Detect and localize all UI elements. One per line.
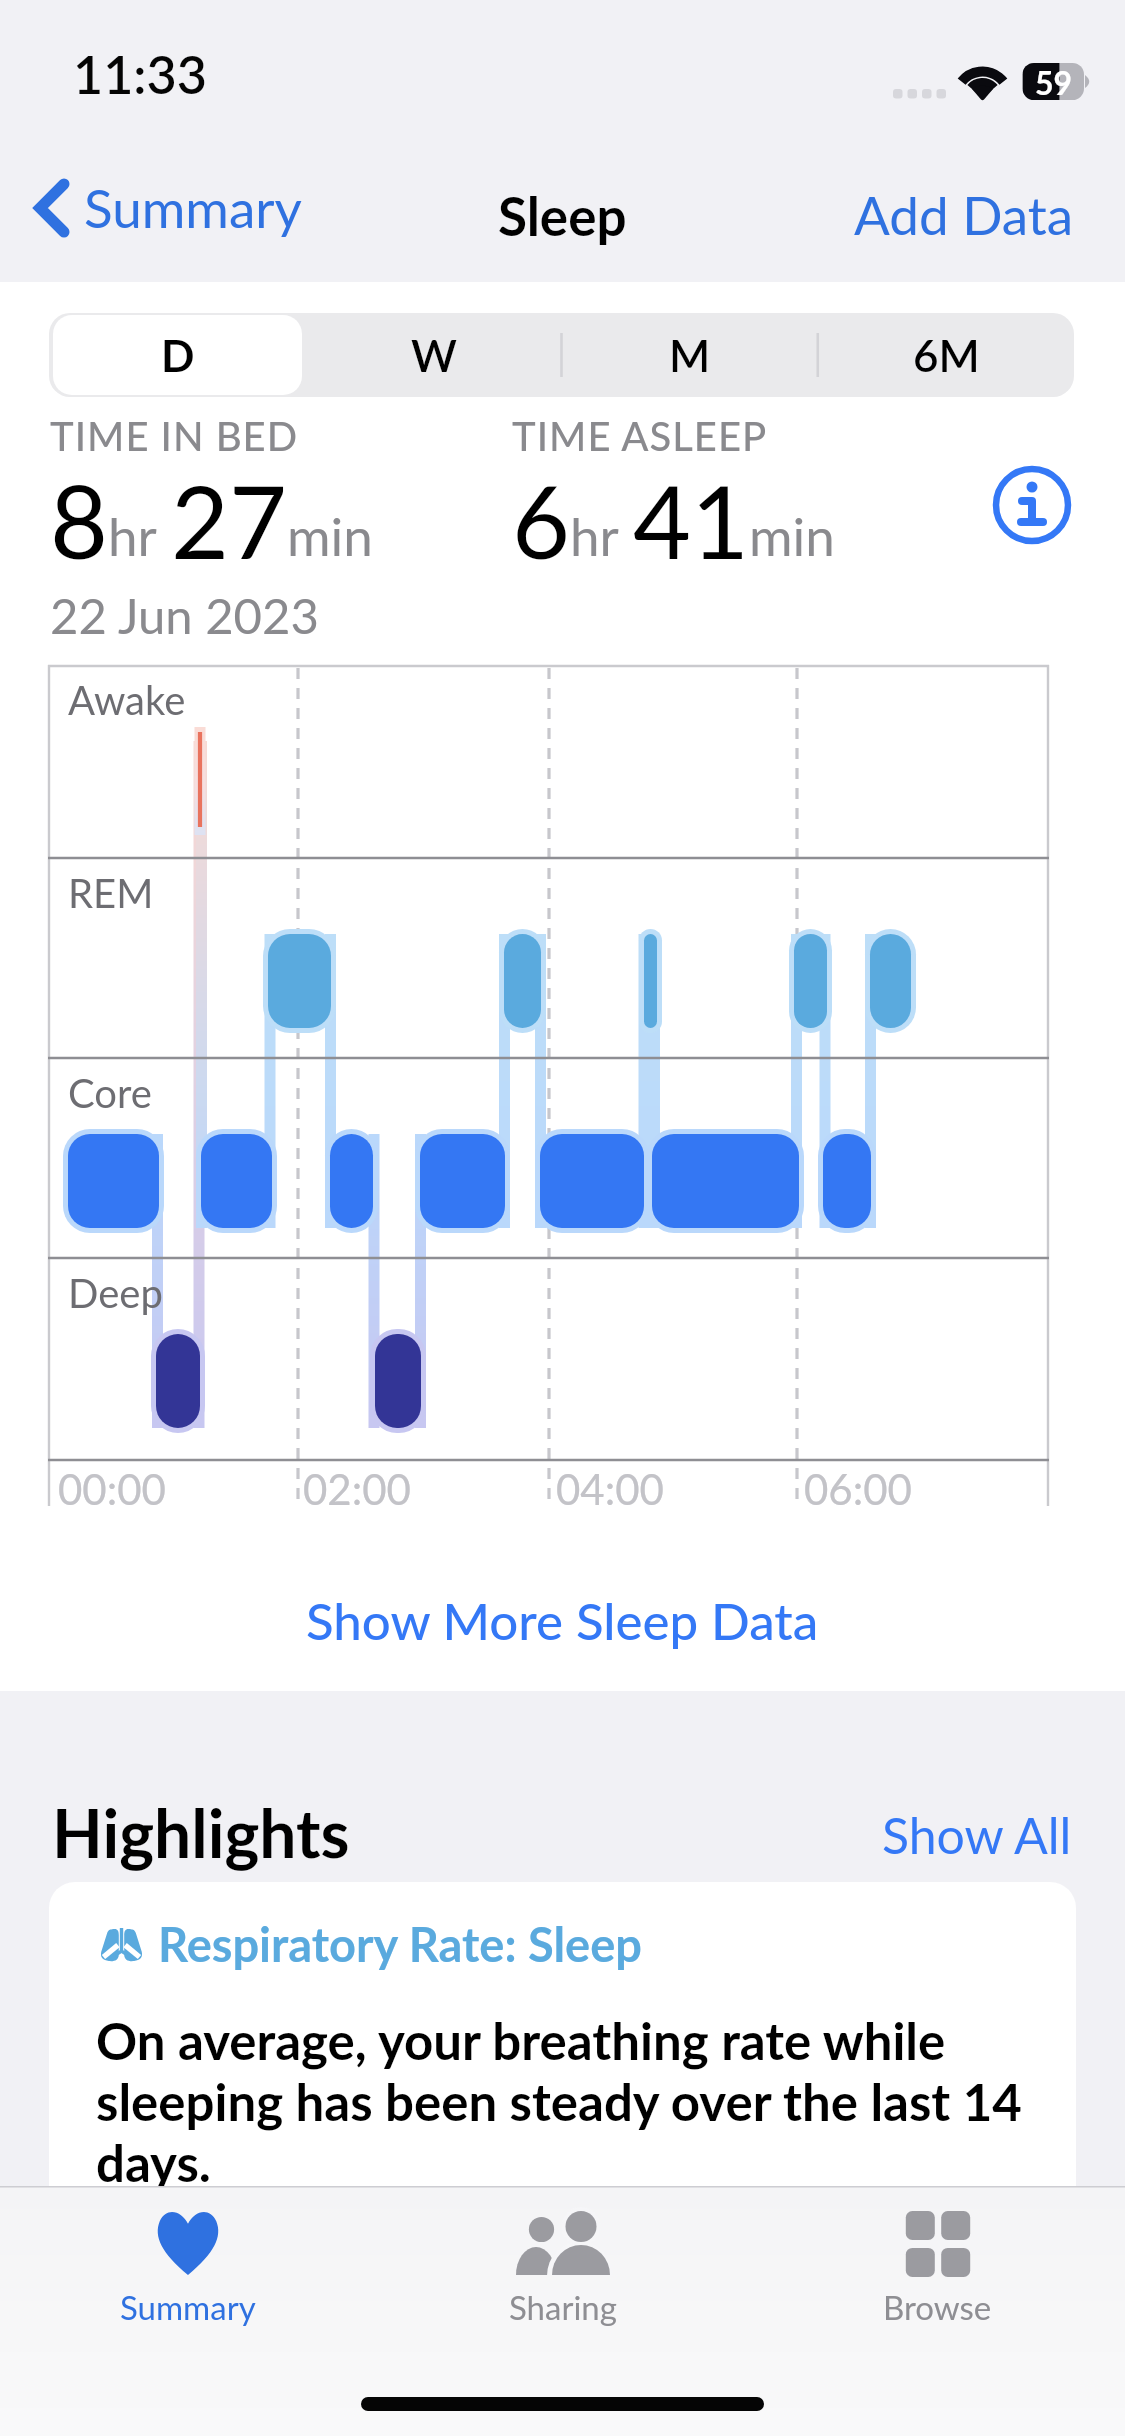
staticText: Browse [883, 2287, 992, 2327]
staticText: 8 [50, 460, 108, 580]
button[interactable]: Browse [750, 2186, 1125, 2366]
staticText: 6M [913, 329, 980, 382]
staticText: 02:00 [303, 1464, 411, 1514]
button[interactable]: M [566, 315, 814, 395]
staticText: On average, your breathing rate while sl… [96, 2010, 1036, 2193]
button[interactable]: D [53, 315, 302, 395]
staticText: M [669, 329, 711, 382]
staticText: 11:33 [73, 43, 207, 105]
button[interactable]: Show All [868, 1795, 1086, 1875]
staticText: Deep [68, 1269, 163, 1317]
staticText: Sleep [498, 184, 627, 248]
button[interactable]: Show More Sleep Data [0, 1576, 1125, 1665]
staticText: 06:00 [804, 1464, 912, 1514]
staticText: Show All [882, 1805, 1072, 1865]
staticText: Sharing [509, 2287, 617, 2327]
staticText: Summary [120, 2287, 256, 2327]
staticText: min [749, 504, 835, 568]
staticText: Awake [68, 676, 186, 724]
staticText: TIME ASLEEP [512, 412, 768, 460]
staticText: 04:00 [556, 1464, 664, 1514]
staticText: 6 [512, 460, 570, 580]
button[interactable]: Summary [0, 2186, 375, 2366]
staticText: 00:00 [58, 1464, 166, 1514]
staticText: Show More Sleep Data [306, 1590, 819, 1651]
button[interactable]: Add Data [803, 169, 1125, 261]
staticText: REM [68, 869, 154, 917]
staticText: Core [68, 1069, 152, 1117]
staticText: D [161, 329, 195, 382]
staticText: 41 [633, 460, 749, 580]
staticText: Summary [84, 176, 302, 240]
staticText: Respiratory Rate: Sleep [158, 1916, 642, 1972]
staticText: W [411, 329, 457, 382]
staticText: TIME IN BED [50, 412, 299, 460]
staticText: Add Data [854, 183, 1074, 247]
staticText: 27 [171, 460, 287, 580]
staticText: hr [108, 504, 157, 568]
staticText: 22 Jun 2023 [50, 586, 319, 645]
staticText: hr [570, 504, 619, 568]
button[interactable]: Information about sleep data [988, 461, 1076, 549]
button[interactable]: Respiratory Rate: Sleep [49, 1882, 1076, 2436]
staticText: Highlights [52, 1793, 350, 1872]
button[interactable]: W [310, 315, 558, 395]
button[interactable]: 6M [822, 315, 1070, 395]
button[interactable]: Summary [24, 164, 312, 252]
button[interactable]: Sharing [375, 2186, 750, 2366]
staticText: 59 [1035, 63, 1073, 100]
staticText: min [287, 504, 373, 568]
